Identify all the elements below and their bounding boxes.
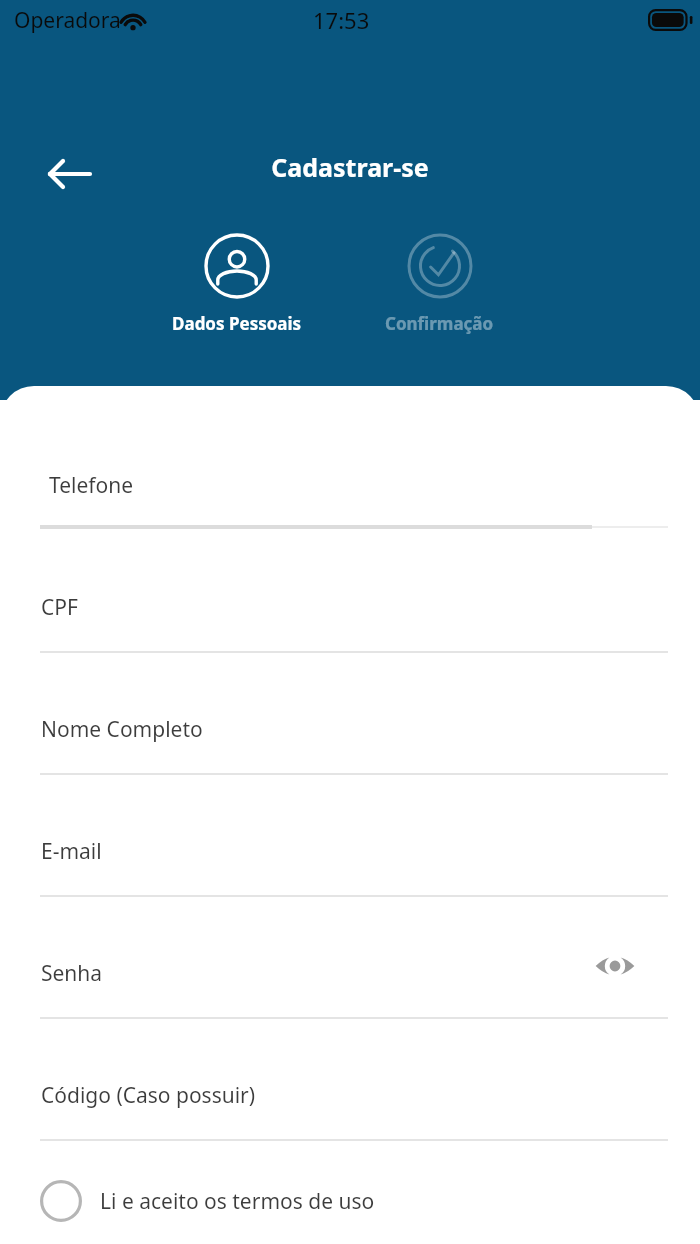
- button[interactable]: CPF: [0, 584, 700, 630]
- staticText: Cadastrar-se: [0, 150, 700, 184]
- button[interactable]: Senha: [0, 950, 700, 996]
- staticText: E-mail: [41, 837, 102, 866]
- staticText: 17:53: [313, 5, 370, 35]
- button[interactable]: Dados Pessoais: [172, 228, 322, 348]
- staticText: Código (Caso possuir): [41, 1081, 256, 1110]
- button[interactable]: Telefone: [0, 462, 700, 508]
- staticText: Dados Pessoais: [172, 312, 302, 335]
- button[interactable]: Voltar: [36, 148, 104, 200]
- button[interactable]: Código (Caso possuir): [0, 1072, 700, 1118]
- button[interactable]: Mostrar senha: [583, 938, 647, 994]
- staticText: Senha: [41, 959, 103, 988]
- button[interactable]: E-mail: [0, 828, 700, 874]
- staticText: CPF: [41, 593, 78, 622]
- staticText: Confirmação: [385, 312, 494, 335]
- button[interactable]: Nome Completo: [0, 706, 700, 752]
- staticText: Nome Completo: [41, 715, 203, 744]
- staticText: Li e aceito os termos de uso: [100, 1187, 375, 1216]
- staticText: Telefone: [49, 471, 134, 500]
- button[interactable]: Li e aceito os termos de uso: [0, 1168, 700, 1234]
- button[interactable]: Confirmação: [385, 228, 535, 348]
- staticText: Operadora: [14, 6, 121, 35]
